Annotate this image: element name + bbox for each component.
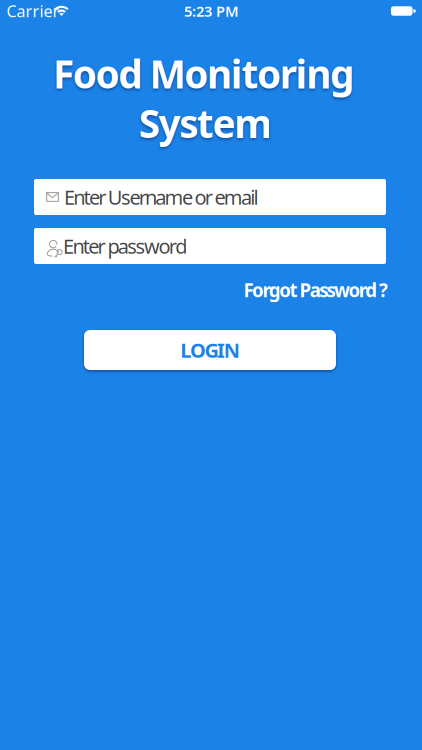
button[interactable]: LOGIN [0,0,422,750]
staticText: LOGIN [180,337,240,363]
staticText: System [139,97,272,149]
staticText: Enter Username or email [64,184,259,210]
button[interactable]: Forgot Password ? [0,0,422,750]
staticText: Food Monitoring [53,48,354,99]
staticText: Forgot Password ? [244,278,388,302]
staticText: 5:23 PM [184,1,239,21]
staticText: Carrier [6,0,59,22]
staticText: Enter password [63,233,187,259]
button[interactable]: Enter password [0,0,422,750]
button[interactable]: Enter Username or email [0,0,422,750]
